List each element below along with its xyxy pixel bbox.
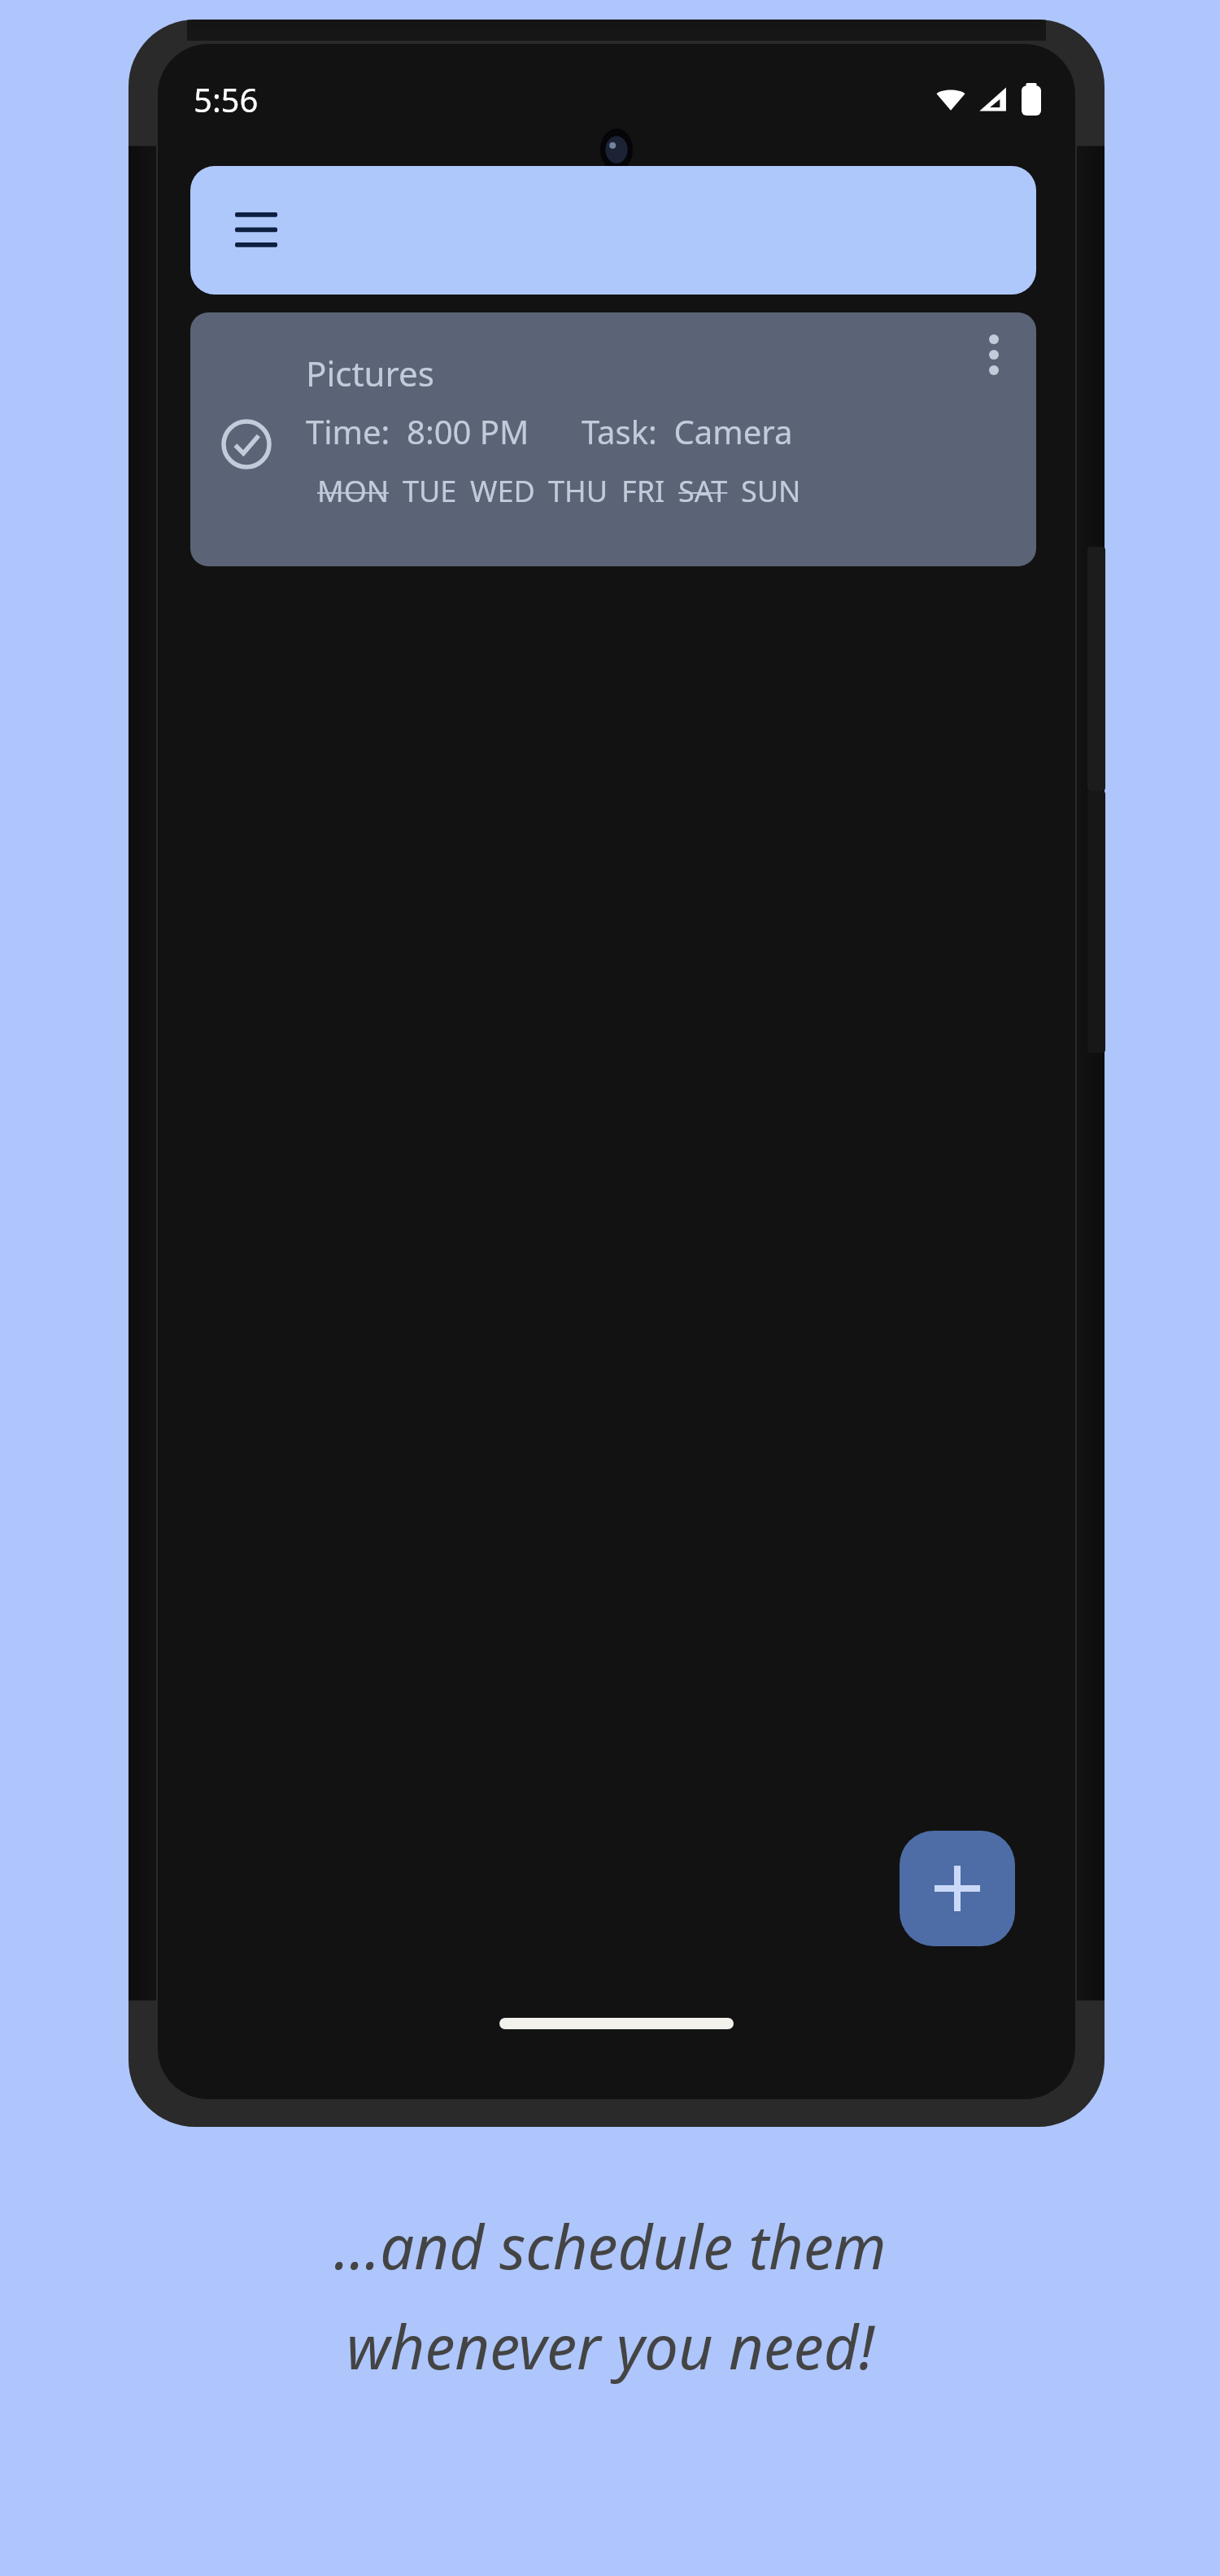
button[interactable]: Toggle task done [211,409,281,479]
button[interactable]: MON [317,471,390,511]
staticText: Pictures [306,350,434,396]
button[interactable]: Toggle task done [190,312,1036,566]
staticText: Time: 8:00 PM [306,409,529,453]
button[interactable]: SUN [741,471,801,511]
button[interactable]: SAT [678,471,728,511]
staticText: Task: Camera [582,409,793,453]
staticText: SAT [678,471,728,511]
button[interactable]: Open navigation menu [190,166,1036,295]
staticText: 5:56 [194,77,259,121]
button[interactable]: THU [548,471,608,511]
staticText: …and schedule them [333,2205,887,2287]
staticText: FRI [621,471,665,511]
staticText: SUN [741,471,801,511]
button[interactable]: Open navigation menu [220,194,293,267]
button[interactable]: TUE [403,471,457,511]
staticText: MON [317,471,390,511]
staticText: THU [548,471,608,511]
staticText: TUE [403,471,457,511]
button[interactable]: WED [470,471,535,511]
button[interactable]: Add task [900,1831,1015,1946]
staticText: WED [470,471,535,511]
button[interactable]: FRI [621,471,665,511]
staticText: whenever you need! [346,2305,874,2387]
button[interactable]: More options [963,324,1025,386]
